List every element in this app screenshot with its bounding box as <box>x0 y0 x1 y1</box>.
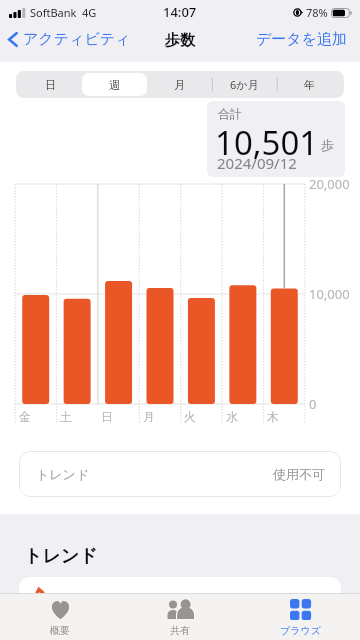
staticText: 14:07 <box>163 3 197 21</box>
staticText: 日 <box>101 409 113 424</box>
staticText: 78% <box>306 5 328 20</box>
button[interactable]: 6か月 <box>212 73 277 96</box>
staticText: 共有 <box>170 624 190 637</box>
staticText: 週 <box>109 78 120 92</box>
staticText: 10,501 <box>215 120 319 165</box>
staticText: SoftBank <box>30 5 77 20</box>
staticText: 0 <box>309 395 317 413</box>
staticText: 歩数 <box>165 31 195 50</box>
staticText: 金 <box>19 409 31 424</box>
staticText: データを追加 <box>256 30 348 49</box>
staticText: 水 <box>226 409 238 424</box>
staticText: 木 <box>267 409 279 424</box>
staticText: ブラウズ <box>280 624 321 637</box>
staticText: トレンド <box>36 466 90 482</box>
staticText: 6か月 <box>230 77 259 92</box>
staticText: 年 <box>304 78 315 92</box>
staticText: 歩 <box>321 137 334 153</box>
staticText: 日 <box>45 78 56 92</box>
staticText: 2024/09/12 <box>217 153 297 173</box>
button[interactable]: 共有 <box>120 593 240 640</box>
staticText: アクティビティ <box>23 30 131 49</box>
staticText: 使用不可 <box>273 466 325 482</box>
staticText: 概要 <box>50 624 70 637</box>
staticText: 合計 <box>218 106 242 121</box>
button[interactable]: 年 <box>277 73 342 96</box>
button[interactable] <box>19 577 341 617</box>
button[interactable]: 日 <box>18 73 82 96</box>
button[interactable]: 月 <box>147 73 212 96</box>
staticText: 月 <box>174 78 185 92</box>
staticText: 20,000 <box>309 175 350 193</box>
staticText: 10,000 <box>309 285 350 303</box>
staticText: 4G <box>82 5 97 20</box>
button[interactable]: データを追加 <box>254 27 350 51</box>
staticText: 月 <box>143 409 155 424</box>
staticText: 土 <box>60 409 72 424</box>
button[interactable]: ブラウズ <box>240 593 360 640</box>
button[interactable]: 概要 <box>0 593 120 640</box>
button[interactable]: トレンド <box>19 451 341 497</box>
button[interactable]: アクティビティ <box>5 27 133 51</box>
button[interactable]: 週 <box>82 73 147 96</box>
staticText: トレンド <box>24 545 98 568</box>
staticText: 火 <box>184 409 196 424</box>
